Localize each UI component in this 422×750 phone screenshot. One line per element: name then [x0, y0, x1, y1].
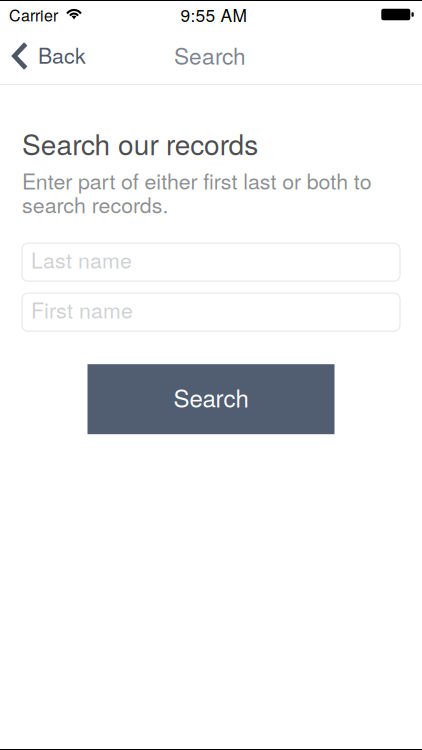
- staticText: Search: [173, 380, 248, 414]
- staticText: Search our records: [22, 123, 258, 163]
- button[interactable]: Back: [0, 34, 110, 78]
- staticText: 9:55 AM: [180, 2, 246, 27]
- button[interactable]: Last name: [22, 243, 400, 281]
- staticText: First name: [31, 294, 133, 324]
- button[interactable]: First name: [22, 293, 400, 331]
- staticText: Last name: [31, 244, 132, 274]
- button[interactable]: Search: [87, 364, 334, 434]
- staticText: Carrier: [9, 3, 58, 26]
- staticText: Back: [38, 39, 86, 70]
- staticText: Search: [174, 39, 246, 71]
- staticText: Enter part of either first last or both …: [22, 165, 372, 219]
